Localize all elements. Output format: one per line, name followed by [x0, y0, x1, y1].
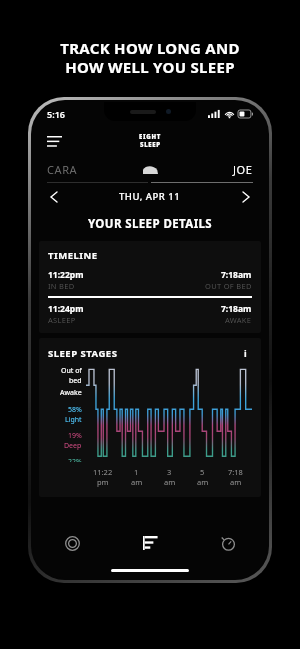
staticText: 7:18am: [221, 303, 252, 315]
staticText: 19%: [68, 431, 82, 441]
staticText: 11:22: [93, 467, 113, 477]
staticText: 7:18: [228, 467, 243, 477]
staticText: am: [131, 477, 143, 487]
button[interactable]: Previous day: [45, 188, 63, 206]
staticText: 58%: [68, 405, 82, 415]
staticText: 3: [167, 467, 172, 477]
button[interactable]: JOE: [160, 156, 253, 182]
button[interactable]: Alarm: [189, 524, 267, 562]
staticText: OUT OF BED: [205, 281, 252, 291]
staticText: am: [230, 477, 242, 487]
button[interactable]: Info: [238, 346, 252, 360]
staticText: pm: [97, 477, 109, 487]
staticText: TIMELINE: [48, 249, 98, 262]
button[interactable]: Next day: [237, 188, 255, 206]
staticText: Out of: [61, 366, 82, 376]
button[interactable]: TIMELINE: [39, 241, 261, 333]
button[interactable]: Sleep details: [111, 524, 189, 562]
staticText: YOUR SLEEP DETAILS: [33, 216, 267, 232]
staticText: CARA: [47, 162, 78, 177]
staticText: i: [244, 347, 247, 359]
staticText: THU, APR 11: [119, 190, 181, 203]
staticText: 22%: [68, 457, 82, 462]
staticText: Deep: [64, 441, 82, 451]
staticText: am: [197, 477, 209, 487]
staticText: 5:16: [47, 108, 65, 120]
staticText: 5: [200, 467, 205, 477]
staticText: JOE: [233, 162, 253, 177]
staticText: 11:22pm: [48, 269, 84, 281]
staticText: Light: [65, 415, 82, 425]
staticText: bed: [69, 376, 82, 386]
staticText: EIGHT: [139, 133, 162, 141]
staticText: ASLEEP: [48, 315, 76, 325]
staticText: AWAKE: [225, 315, 252, 325]
staticText: SLEEP: [140, 141, 161, 149]
staticText: 11:24pm: [48, 303, 84, 315]
button[interactable]: Home: [33, 524, 111, 562]
button[interactable]: Menu: [43, 132, 66, 151]
staticText: 1: [134, 467, 139, 477]
button[interactable]: CARA: [47, 156, 140, 182]
staticText: am: [164, 477, 176, 487]
button[interactable]: Bed: [140, 159, 160, 179]
staticText: TRACK HOW LONG AND HOW WELL YOU SLEEP: [60, 38, 240, 77]
staticText: SLEEP STAGES: [48, 347, 118, 360]
staticText: 7:18am: [221, 269, 252, 281]
staticText: Awake: [60, 388, 82, 398]
staticText: IN BED: [48, 281, 75, 291]
